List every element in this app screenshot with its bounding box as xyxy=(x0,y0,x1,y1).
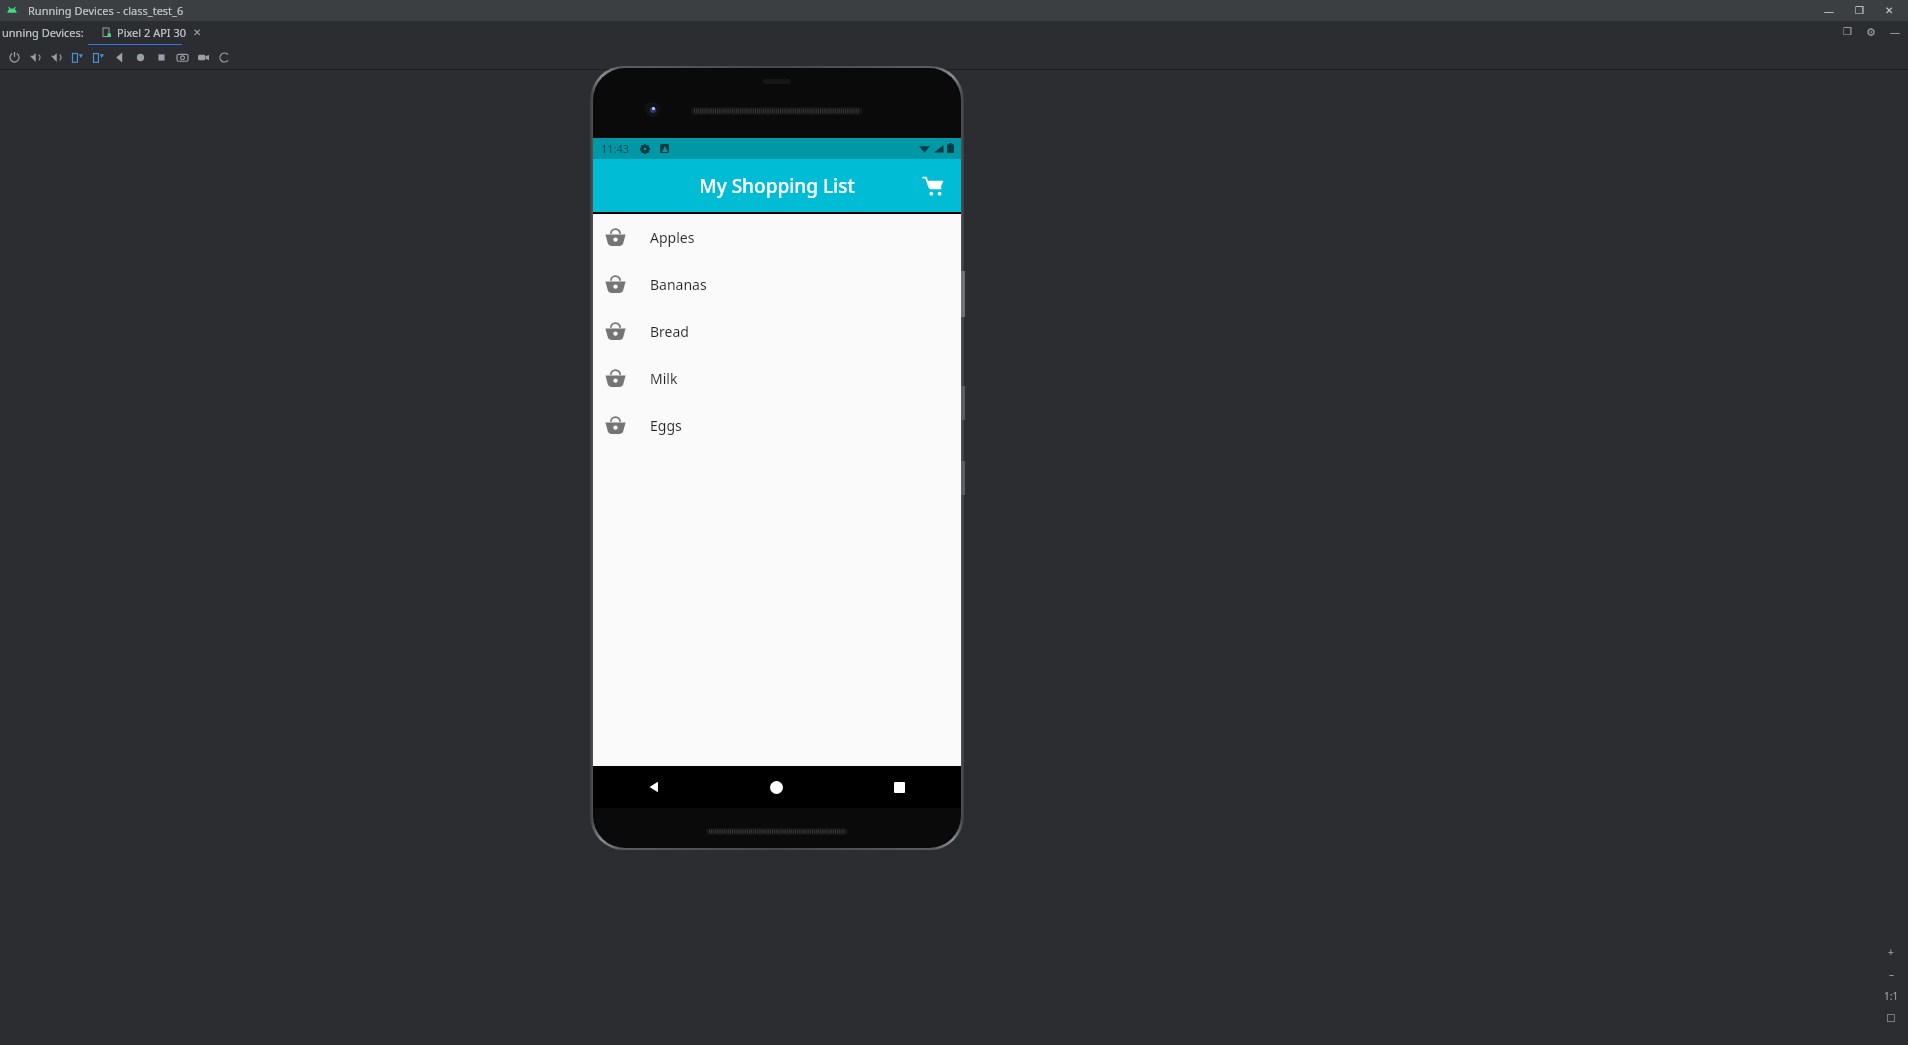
staticText: Pixel 2 API 30 xyxy=(117,25,187,40)
button[interactable]: Emulator control 6 xyxy=(130,47,151,68)
button[interactable]: Bananas xyxy=(593,261,961,308)
staticText: □ xyxy=(1886,1012,1896,1024)
button[interactable]: Apples xyxy=(593,214,961,261)
staticText: Eggs xyxy=(650,416,682,435)
staticText: Milk xyxy=(650,369,678,388)
button[interactable]: Emulator control 0 xyxy=(4,47,25,68)
button[interactable]: Emulator control 9 xyxy=(193,47,214,68)
staticText: + xyxy=(1888,945,1894,959)
button[interactable]: Emulator control 2 xyxy=(46,47,67,68)
button[interactable]: Pixel 2 API 30 xyxy=(102,21,202,43)
staticText: — xyxy=(1824,4,1834,18)
staticText: — xyxy=(1890,25,1900,39)
button[interactable]: Recent apps xyxy=(838,766,961,808)
button[interactable]: Emulator control 4 xyxy=(88,47,109,68)
button[interactable]: Emulator control 8 xyxy=(172,47,193,68)
staticText: Apples xyxy=(650,228,695,247)
button[interactable]: Window control xyxy=(1814,0,1844,21)
button[interactable]: Emulator control 3 xyxy=(67,47,88,68)
button[interactable]: Back xyxy=(593,766,715,808)
staticText: ✕ xyxy=(193,27,202,39)
button[interactable]: Emulator control 1 xyxy=(25,47,46,68)
staticText: My Shopping List xyxy=(699,173,855,199)
button[interactable]: Emulator control 7 xyxy=(151,47,172,68)
button[interactable]: Zoom □ xyxy=(1880,1007,1902,1029)
staticText: Bread xyxy=(650,322,689,341)
button[interactable]: Bread xyxy=(593,308,961,355)
staticText: unning Devices: xyxy=(2,25,84,40)
staticText: 1:1 xyxy=(1884,989,1899,1003)
staticText: Running Devices - class_test_6 xyxy=(28,3,184,18)
button[interactable]: Milk xyxy=(593,355,961,402)
staticText: ❐ xyxy=(1843,26,1852,38)
button[interactable]: Eggs xyxy=(593,402,961,449)
button[interactable]: Emulator control 10 xyxy=(214,47,235,68)
button[interactable]: Shopping cart xyxy=(913,166,953,206)
button[interactable]: Emulator control 5 xyxy=(109,47,130,68)
staticText: ❐ xyxy=(1855,5,1864,17)
staticText: ✕ xyxy=(1885,5,1894,17)
button[interactable]: Zoom + xyxy=(1880,941,1902,963)
staticText: 11:43 xyxy=(601,141,630,156)
button[interactable]: Window control xyxy=(1844,0,1874,21)
staticText: Bananas xyxy=(650,275,707,294)
staticText: – xyxy=(1889,967,1894,981)
button[interactable]: Zoom 1:1 xyxy=(1880,985,1902,1007)
button[interactable]: Home xyxy=(715,766,838,808)
button[interactable]: Window control xyxy=(1874,0,1904,21)
staticText: ⚙ xyxy=(1866,26,1876,39)
button[interactable]: Zoom – xyxy=(1880,963,1902,985)
